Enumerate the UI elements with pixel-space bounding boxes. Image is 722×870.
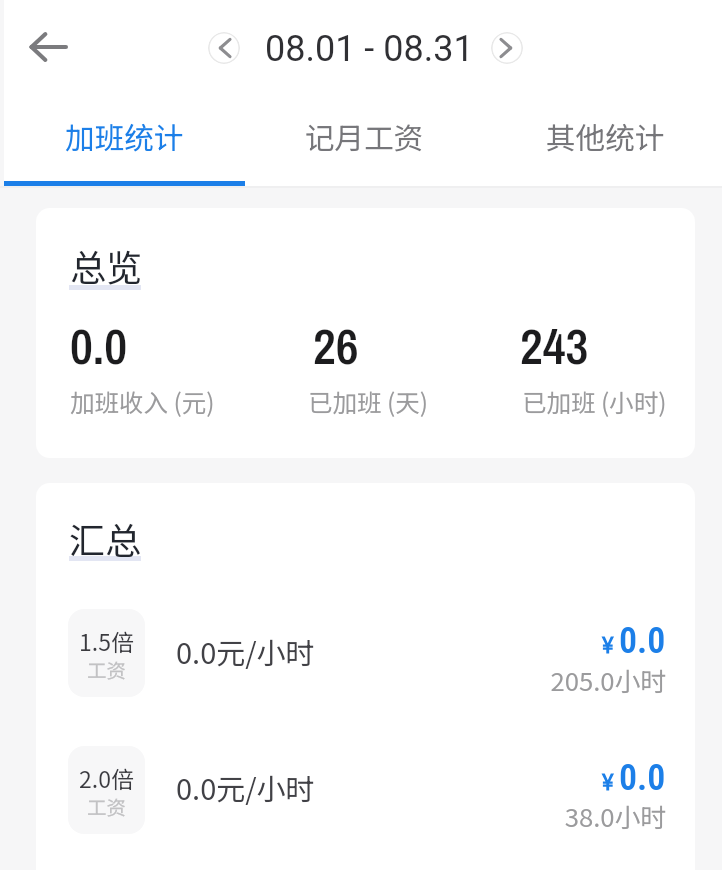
button[interactable]: 加班统计 bbox=[4, 101, 244, 171]
staticText: 26 bbox=[313, 312, 359, 379]
staticText: ¥ bbox=[602, 770, 614, 796]
staticText: 工资 bbox=[87, 792, 127, 820]
staticText: 加班收入 (元) bbox=[70, 384, 215, 419]
staticText: ¥ bbox=[602, 633, 614, 659]
staticText: 加班统计 bbox=[65, 115, 184, 158]
button[interactable]: Next period bbox=[491, 32, 523, 64]
button[interactable]: 2.0倍 bbox=[68, 746, 145, 834]
staticText: 0.0 bbox=[619, 757, 666, 799]
staticText: 38.0小时 bbox=[564, 797, 666, 834]
staticText: 1.5倍 bbox=[79, 624, 134, 657]
staticText: 0.0元/小时 bbox=[176, 766, 315, 808]
button[interactable]: 其他统计 bbox=[485, 101, 722, 171]
staticText: 记月工资 bbox=[305, 115, 424, 158]
staticText: 工资 bbox=[87, 655, 127, 683]
staticText: 其他统计 bbox=[546, 115, 665, 158]
button[interactable]: Previous period bbox=[208, 32, 240, 64]
staticText: 205.0小时 bbox=[550, 661, 666, 698]
staticText: 2.0倍 bbox=[79, 761, 134, 794]
button[interactable]: Back bbox=[14, 17, 82, 77]
staticText: 汇总 bbox=[69, 512, 142, 564]
button[interactable]: 08.01 - 08.31 bbox=[265, 28, 474, 70]
staticText: 总览 bbox=[70, 239, 143, 291]
button[interactable]: 记月工资 bbox=[244, 101, 485, 171]
staticText: 0.0 bbox=[70, 312, 127, 379]
staticText: 0.0 bbox=[619, 620, 666, 662]
staticText: 0.0元/小时 bbox=[176, 630, 315, 672]
staticText: 已加班 (小时) bbox=[522, 384, 667, 419]
button[interactable]: 1.5倍 bbox=[68, 609, 145, 697]
staticText: 已加班 (天) bbox=[308, 384, 429, 419]
staticText: 243 bbox=[520, 312, 589, 379]
